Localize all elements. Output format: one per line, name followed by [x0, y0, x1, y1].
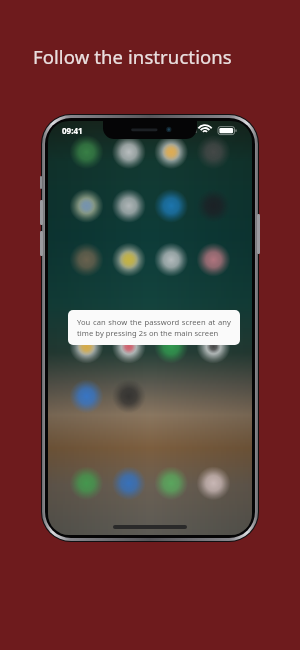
other: Silent switch — [40, 176, 42, 189]
staticText: Follow the instructions — [33, 44, 232, 69]
other: Volume up — [40, 200, 43, 225]
button[interactable]: You can show the password screen at any … — [68, 310, 240, 345]
staticText: You can show the password screen at any … — [77, 317, 231, 338]
other: Power — [257, 214, 260, 254]
other: Volume down — [40, 231, 43, 256]
staticText: 09:41 — [62, 125, 83, 136]
